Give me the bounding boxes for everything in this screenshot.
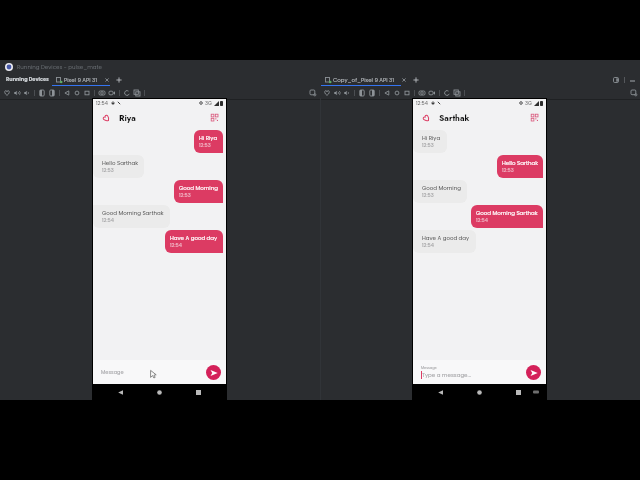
button[interactable]: Home: [72, 88, 82, 98]
staticText: Have A good day: [170, 234, 218, 242]
button[interactable]: Good Morning: [174, 180, 223, 203]
button[interactable]: Record screen: [107, 88, 117, 98]
staticText: 12:54: [96, 100, 108, 107]
button[interactable]: New tab: [411, 75, 420, 84]
button[interactable]: Home: [392, 88, 402, 98]
button[interactable]: Hello Sarthak: [497, 155, 543, 178]
staticText: Good Morning: [422, 184, 461, 192]
button[interactable]: Send: [526, 365, 541, 380]
button[interactable]: Good Morning: [413, 180, 467, 203]
button[interactable]: Home: [152, 385, 166, 399]
button[interactable]: Back: [433, 385, 447, 399]
button[interactable]: Send: [206, 365, 221, 380]
staticText: Message: [101, 369, 124, 376]
button[interactable]: Good Morning Sarthak: [93, 205, 170, 228]
button[interactable]: Open in separate window: [611, 75, 621, 85]
button[interactable]: Power: [322, 88, 332, 98]
button[interactable]: Rotate left: [357, 88, 367, 98]
button[interactable]: Back: [382, 88, 392, 98]
staticText: Type a message...: [422, 371, 471, 379]
button[interactable]: Home: [472, 385, 486, 399]
button[interactable]: Overview: [82, 88, 92, 98]
button[interactable]: Recent apps: [191, 385, 205, 399]
button[interactable]: Volume down: [22, 88, 32, 98]
button[interactable]: Volume down: [342, 88, 352, 98]
button[interactable]: Rotate right: [367, 88, 377, 98]
button[interactable]: Hi Riya: [413, 130, 447, 153]
staticText: Riya: [119, 112, 136, 124]
staticText: Good Morning: [179, 184, 218, 192]
staticText: 12:53: [199, 142, 211, 149]
button[interactable]: Minimize: [628, 76, 637, 85]
button[interactable]: New tab: [114, 75, 123, 84]
staticText: Hello Sarthak: [502, 159, 538, 167]
button[interactable]: Copy_of_Pixel 9 API 31: [321, 73, 420, 86]
staticText: 12:54: [416, 100, 428, 107]
button[interactable]: Message: [101, 361, 203, 383]
staticText: 3G: [525, 100, 532, 107]
staticText: 12:53: [502, 167, 514, 174]
staticText: Copy_of_Pixel 9 API 31: [333, 76, 395, 84]
button[interactable]: Good Morning Sarthak: [471, 205, 543, 228]
staticText: Hi Riya: [199, 134, 218, 142]
button[interactable]: Rotate right: [47, 88, 57, 98]
staticText: 12:54: [476, 217, 488, 224]
button[interactable]: More: [452, 88, 462, 98]
button[interactable]: Back: [113, 385, 127, 399]
staticText: Running Devices - pulse_mate: [17, 63, 102, 71]
staticText: 12:54: [422, 242, 434, 249]
button[interactable]: Have A good day: [165, 230, 223, 253]
button[interactable]: Screenshot: [97, 88, 107, 98]
button[interactable]: Power: [2, 88, 12, 98]
staticText: 12:54: [170, 242, 182, 249]
button[interactable]: Pixel 9 API 31: [52, 73, 123, 86]
button[interactable]: Record screen: [427, 88, 437, 98]
staticText: Message: [421, 365, 437, 370]
button[interactable]: Message: [421, 361, 523, 383]
staticText: Good Morning Sarthak: [476, 209, 538, 217]
button[interactable]: Undo: [122, 88, 132, 98]
staticText: Sarthak: [439, 112, 470, 124]
button[interactable]: More: [132, 88, 142, 98]
button[interactable]: Recent apps: [511, 385, 525, 399]
staticText: 3G: [205, 100, 212, 107]
staticText: Pixel 9 API 31: [64, 76, 98, 84]
button[interactable]: Scan QR code: [529, 112, 540, 123]
staticText: 12:54: [102, 217, 114, 224]
button[interactable]: Rotate left: [37, 88, 47, 98]
staticText: 12:53: [102, 167, 114, 174]
button[interactable]: Profile: [421, 113, 431, 123]
button[interactable]: Back: [62, 88, 72, 98]
button[interactable]: Undo: [442, 88, 452, 98]
button[interactable]: Hi Riya: [194, 130, 223, 153]
button[interactable]: Volume up: [332, 88, 342, 98]
button[interactable]: Hide keyboard: [530, 386, 542, 398]
staticText: 12:53: [179, 192, 191, 199]
staticText: Good Morning Sarthak: [102, 209, 164, 217]
button[interactable]: Have A good day: [413, 230, 476, 253]
staticText: 12:53: [422, 142, 434, 149]
button[interactable]: Overview: [402, 88, 412, 98]
staticText: Hello Sarthak: [102, 159, 138, 167]
button[interactable]: Manage devices: [308, 88, 318, 98]
staticText: Running Devices: [6, 76, 49, 83]
button[interactable]: Hello Sarthak: [93, 155, 144, 178]
button[interactable]: Profile: [101, 113, 111, 123]
staticText: Have A good day: [422, 234, 470, 242]
button[interactable]: Device settings: [629, 88, 639, 98]
button[interactable]: Close tab: [400, 76, 407, 83]
button[interactable]: Scan QR code: [209, 112, 220, 123]
button[interactable]: Close tab: [103, 76, 110, 83]
button[interactable]: Screenshot: [417, 88, 427, 98]
button[interactable]: Volume up: [12, 88, 22, 98]
staticText: 12:53: [422, 192, 434, 199]
staticText: Hi Riya: [422, 134, 441, 142]
